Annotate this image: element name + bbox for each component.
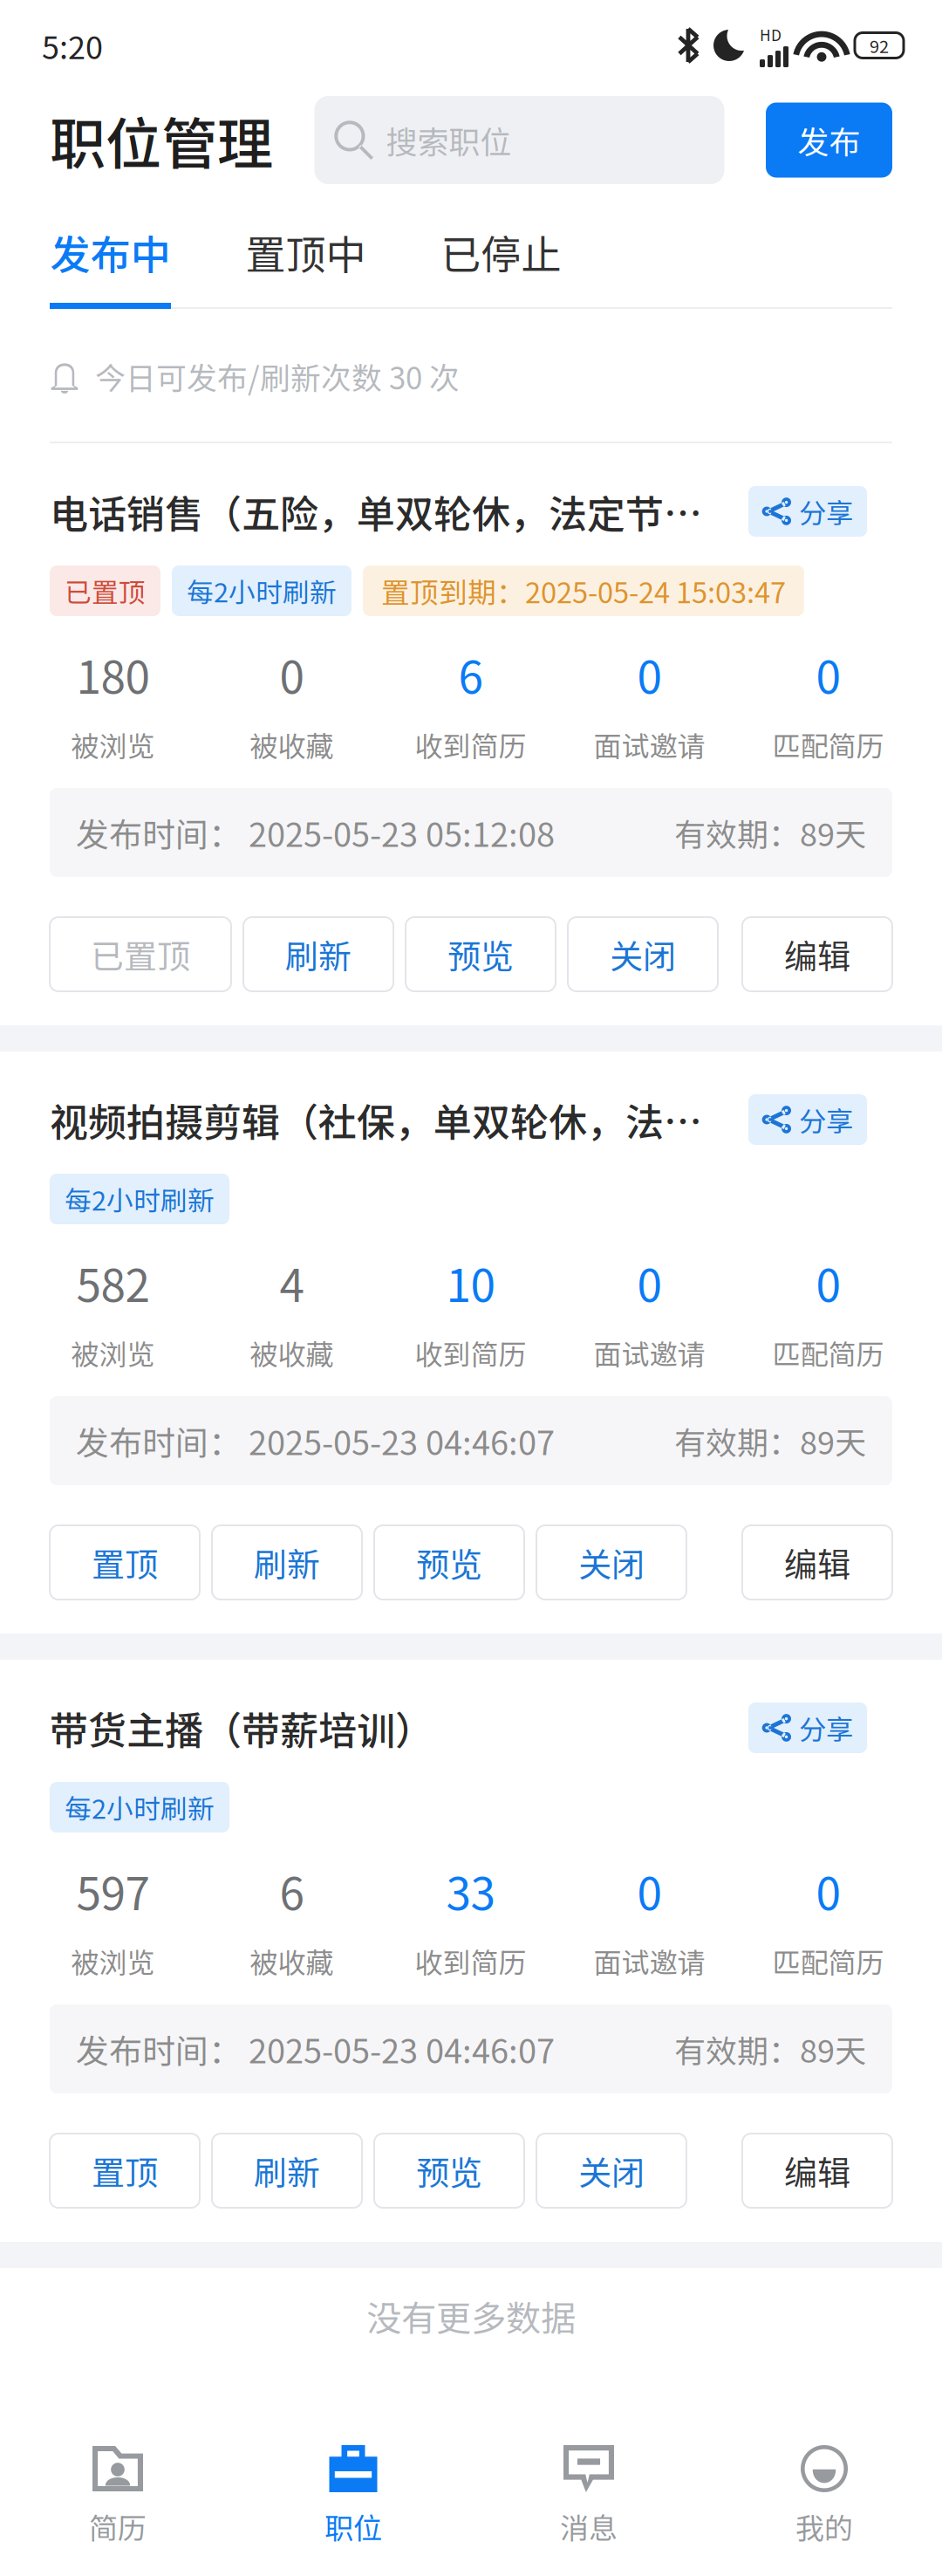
staticText: 职位管理 — [50, 100, 273, 181]
button[interactable]: 已置顶 — [50, 917, 231, 991]
staticText: 0 — [637, 642, 662, 706]
staticText: 0 — [816, 1250, 840, 1315]
staticText: 已置顶 — [91, 930, 190, 978]
staticText: 刷新 — [254, 2147, 320, 2195]
button[interactable]: 置顶中 — [245, 225, 366, 279]
staticText: 预览 — [416, 1538, 482, 1586]
staticText: 面试邀请 — [594, 724, 705, 765]
button[interactable]: 预览 — [374, 1525, 524, 1600]
staticText: 被收藏 — [250, 1941, 334, 1981]
staticText: 4 — [280, 1250, 304, 1315]
staticText: 发布中 — [50, 223, 171, 281]
staticText: 0 — [637, 1858, 662, 1923]
staticText: 0 — [816, 642, 840, 706]
staticText: 180 — [76, 642, 150, 706]
button[interactable]: 发布 — [766, 103, 892, 178]
staticText: 有效期：89天 — [674, 2026, 866, 2072]
button[interactable]: 分享 — [748, 1094, 867, 1145]
button[interactable]: 刷新 — [212, 1525, 362, 1600]
staticText: 已停止 — [441, 223, 561, 281]
staticText: 置顶到期：2025-05-24 15:03:47 — [381, 570, 786, 611]
staticText: 582 — [76, 1250, 150, 1315]
staticText: 视频拍摄剪辑（社保，单双轮休，法… — [50, 1092, 702, 1147]
button[interactable]: 编辑 — [742, 917, 892, 991]
staticText: 被收藏 — [250, 1332, 334, 1373]
button[interactable]: 职位 — [235, 2444, 471, 2544]
staticText: 2025-05-23 05:12:08 — [249, 808, 555, 856]
button[interactable]: 关闭 — [536, 1525, 686, 1600]
staticText: 分享 — [799, 1708, 853, 1748]
button[interactable]: 预览 — [374, 2134, 524, 2208]
staticText: 0 — [280, 642, 304, 706]
button[interactable]: 已停止 — [440, 225, 562, 279]
staticText: 有效期：89天 — [674, 810, 866, 855]
staticText: 预览 — [447, 930, 514, 978]
staticText: 每2小时刷新 — [187, 571, 337, 610]
staticText: 简历 — [89, 2505, 147, 2547]
staticText: 被浏览 — [71, 1941, 155, 1981]
button[interactable]: 编辑 — [742, 2134, 892, 2208]
staticText: 编辑 — [784, 930, 850, 978]
staticText: 0 — [637, 1250, 662, 1315]
staticText: 编辑 — [784, 1538, 850, 1586]
staticText: 每2小时刷新 — [65, 1788, 215, 1827]
button[interactable]: 关闭 — [568, 917, 718, 991]
staticText: 置顶 — [92, 2147, 158, 2195]
button[interactable]: 我的 — [706, 2444, 942, 2544]
button[interactable]: 预览 — [406, 917, 556, 991]
button[interactable]: 分享 — [748, 486, 867, 537]
button[interactable]: 置顶 — [50, 2134, 200, 2208]
staticText: 6 — [280, 1858, 304, 1923]
staticText: 92 — [870, 33, 889, 58]
staticText: 关闭 — [610, 930, 676, 978]
staticText: 分享 — [799, 492, 853, 531]
staticText: 消息 — [560, 2505, 618, 2547]
staticText: 收到简历 — [415, 1332, 526, 1373]
staticText: 匹配简历 — [772, 724, 884, 765]
staticText: 597 — [76, 1858, 150, 1923]
staticText: 发布时间： — [76, 2025, 242, 2073]
staticText: 10 — [446, 1250, 495, 1315]
button[interactable]: 关闭 — [536, 2134, 686, 2208]
staticText: 收到简历 — [415, 1941, 526, 1981]
button[interactable]: 编辑 — [742, 1525, 892, 1600]
staticText: 搜索职位 — [386, 117, 512, 163]
staticText: 已置顶 — [65, 571, 146, 610]
staticText: 有效期：89天 — [674, 1418, 866, 1463]
staticText: 今日可发布/刷新次数 30 次 — [95, 354, 460, 398]
button[interactable]: 消息 — [471, 2444, 706, 2544]
staticText: 预览 — [416, 2147, 482, 2195]
staticText: 职位 — [324, 2505, 382, 2547]
button[interactable]: 简历 — [0, 2444, 235, 2544]
staticText: 刷新 — [254, 1538, 320, 1586]
staticText: 发布 — [798, 117, 860, 163]
button[interactable]: 分享 — [748, 1702, 867, 1753]
staticText: 分享 — [799, 1100, 853, 1139]
staticText: 关闭 — [578, 2147, 645, 2195]
staticText: 被收藏 — [250, 724, 334, 765]
staticText: 每2小时刷新 — [65, 1180, 215, 1218]
staticText: 被浏览 — [71, 1332, 155, 1373]
staticText: 2025-05-23 04:46:07 — [249, 2025, 555, 2073]
staticText: 置顶中 — [246, 223, 366, 281]
staticText: 置顶 — [92, 1538, 158, 1586]
staticText: 0 — [816, 1858, 840, 1923]
button[interactable]: 刷新 — [243, 917, 393, 991]
staticText: 5:20 — [42, 23, 103, 68]
staticText: 带货主播（带薪培训） — [50, 1700, 433, 1756]
staticText: 面试邀请 — [594, 1332, 705, 1373]
staticText: 6 — [458, 642, 483, 706]
button[interactable]: 置顶 — [50, 1525, 200, 1600]
staticText: 编辑 — [784, 2147, 850, 2195]
staticText: 收到简历 — [415, 724, 526, 765]
staticText: 刷新 — [285, 930, 352, 978]
button[interactable]: 刷新 — [212, 2134, 362, 2208]
staticText: 匹配简历 — [772, 1941, 884, 1981]
button[interactable]: 发布中 — [50, 225, 171, 279]
staticText: 没有更多数据 — [366, 2290, 576, 2341]
staticText: 33 — [446, 1858, 495, 1923]
staticText: 电话销售（五险，单双轮休，法定节… — [50, 484, 702, 539]
staticText: 关闭 — [578, 1538, 645, 1586]
staticText: 发布时间： — [76, 808, 242, 856]
staticText: 被浏览 — [71, 724, 155, 765]
